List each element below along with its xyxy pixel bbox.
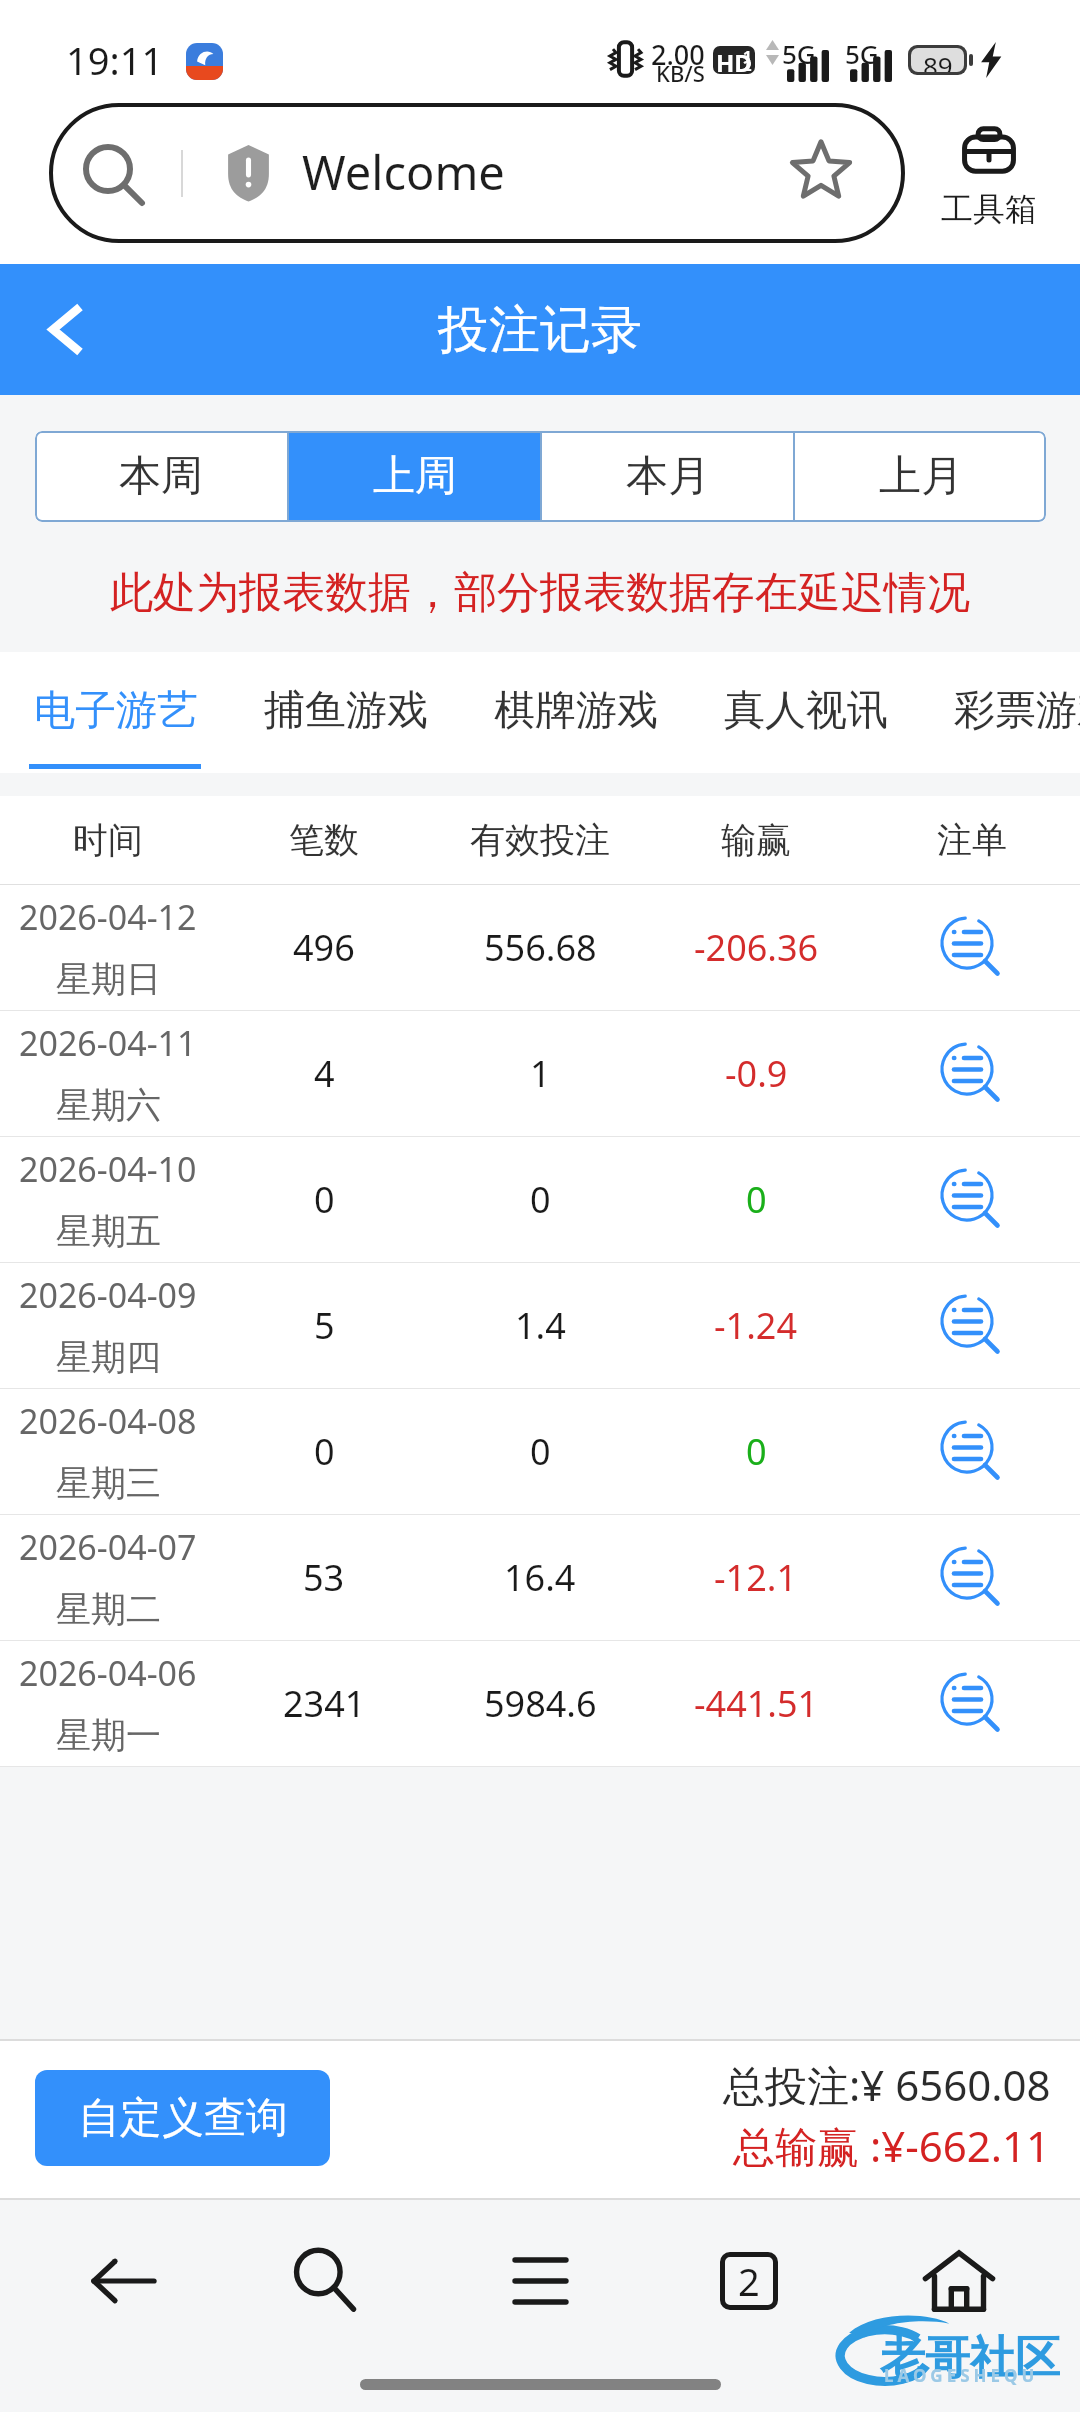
button[interactable]: View bet detail (927, 1533, 1017, 1623)
button[interactable]: 捕鱼游戏 (246, 652, 446, 773)
staticText: 0 (530, 1175, 551, 1224)
staticText: KB/S (656, 58, 705, 88)
button[interactable]: 真人视讯 (706, 652, 906, 773)
button[interactable]: Search (261, 2216, 391, 2346)
staticText: 星期四 (56, 1335, 161, 1379)
button[interactable]: 彩票游戏 (936, 652, 1080, 773)
staticText: 星期二 (56, 1587, 161, 1631)
staticText: 2341 (283, 1679, 366, 1728)
staticText: 2026-04-09 (19, 1272, 197, 1318)
staticText: 5G (845, 36, 879, 71)
staticText: 16.4 (504, 1553, 576, 1602)
staticText: 2026-04-08 (19, 1398, 197, 1444)
staticText: 2 (743, 55, 752, 74)
staticText: 2026-04-12 (19, 894, 197, 940)
staticText: 棋牌游戏 (494, 685, 658, 737)
button[interactable]: Back (8, 264, 124, 395)
button[interactable]: 2026-04-07 (0, 1515, 1080, 1640)
button[interactable]: 本周 (35, 431, 287, 522)
staticText: 5984.6 (484, 1679, 597, 1728)
button[interactable]: 2026-04-09 (0, 1263, 1080, 1388)
staticText: 2026-04-11 (19, 1020, 197, 1066)
staticText: 总投注:¥ 6560.08 (723, 2056, 1051, 2113)
staticText: 星期日 (56, 957, 161, 1001)
staticText: 输赢 (721, 818, 791, 862)
staticText: 星期三 (56, 1461, 161, 1505)
staticText: 老哥社区 (880, 2330, 1060, 2387)
staticText: 捕鱼游戏 (264, 685, 428, 737)
staticText: 0 (530, 1427, 551, 1476)
staticText: HD (716, 46, 752, 74)
button[interactable]: Bookmark (775, 124, 867, 216)
staticText: 2026-04-06 (19, 1650, 197, 1696)
staticText: LAOGESHEQU (884, 2364, 1039, 2387)
button[interactable]: 上周 (289, 431, 540, 522)
button[interactable]: 上月 (795, 431, 1046, 522)
staticText: 0 (746, 1427, 767, 1476)
staticText: 2026-04-07 (19, 1524, 197, 1570)
staticText: 496 (293, 923, 355, 972)
staticText: 自定义查询 (78, 2092, 288, 2145)
button[interactable]: Home (894, 2216, 1024, 2346)
staticText: 工具箱 (941, 189, 1037, 229)
button[interactable]: View bet detail (927, 1281, 1017, 1371)
staticText: 星期一 (56, 1713, 161, 1757)
staticText: 投注记录 (438, 298, 642, 362)
staticText: 星期六 (56, 1083, 161, 1127)
staticText: -441.51 (694, 1679, 819, 1728)
button[interactable]: 棋牌游戏 (476, 652, 676, 773)
button[interactable]: 2026-04-10 (0, 1137, 1080, 1262)
staticText: 2 (738, 2255, 760, 2307)
staticText: 0 (314, 1427, 335, 1476)
staticText: 1 (530, 1049, 551, 1098)
staticText: 1.4 (515, 1301, 566, 1350)
staticText: 1 (743, 46, 752, 65)
button[interactable]: View bet detail (927, 1659, 1017, 1749)
staticText: -0.9 (725, 1049, 788, 1098)
staticText: -206.36 (694, 923, 819, 972)
button[interactable]: Back (59, 2216, 189, 2346)
staticText: 53 (303, 1553, 345, 1602)
button[interactable]: 电子游艺 (16, 652, 216, 773)
button[interactable]: 2026-04-12 (0, 885, 1080, 1010)
staticText: 电子游艺 (34, 685, 198, 737)
staticText: 本月 (626, 450, 710, 503)
staticText: -1.24 (714, 1301, 798, 1350)
staticText: 注单 (937, 818, 1007, 862)
button[interactable]: Welcome (49, 103, 905, 243)
button[interactable]: 自定义查询 (35, 2070, 330, 2166)
staticText: 本周 (119, 450, 203, 503)
staticText: 上月 (879, 450, 963, 503)
staticText: 星期五 (56, 1209, 161, 1253)
button[interactable]: Menu (475, 2216, 605, 2346)
button[interactable]: View bet detail (927, 1155, 1017, 1245)
staticText: 19:11 (66, 34, 164, 86)
button[interactable]: 2026-04-06 (0, 1641, 1080, 1766)
staticText: 0 (746, 1175, 767, 1224)
button[interactable]: View bet detail (927, 1407, 1017, 1497)
staticText: -12.1 (714, 1553, 798, 1602)
staticText: 5G (782, 36, 816, 71)
staticText: 时间 (73, 818, 143, 862)
staticText: 0 (314, 1175, 335, 1224)
button[interactable]: 本月 (542, 431, 793, 522)
staticText: Welcome (302, 140, 505, 204)
staticText: 真人视讯 (724, 685, 888, 737)
staticText: 有效投注 (470, 818, 610, 862)
staticText: 2.00 (651, 36, 705, 73)
button[interactable]: View bet detail (927, 903, 1017, 993)
staticText: 上周 (373, 450, 457, 503)
staticText: 此处为报表数据，部分报表数据存在延迟情况 (110, 566, 970, 620)
button[interactable]: 2026-04-11 (0, 1011, 1080, 1136)
button[interactable]: 2026-04-08 (0, 1389, 1080, 1514)
button[interactable]: 工具箱 (930, 105, 1048, 250)
staticText: 5 (314, 1301, 335, 1350)
staticText: 556.68 (484, 923, 597, 972)
staticText: 笔数 (289, 818, 359, 862)
button[interactable]: Tabs (684, 2216, 814, 2346)
staticText: 89 (923, 48, 953, 72)
staticText: 4 (314, 1049, 335, 1098)
staticText: 2026-04-10 (19, 1146, 197, 1192)
button[interactable]: View bet detail (927, 1029, 1017, 1119)
staticText: 彩票游戏 (954, 685, 1080, 737)
